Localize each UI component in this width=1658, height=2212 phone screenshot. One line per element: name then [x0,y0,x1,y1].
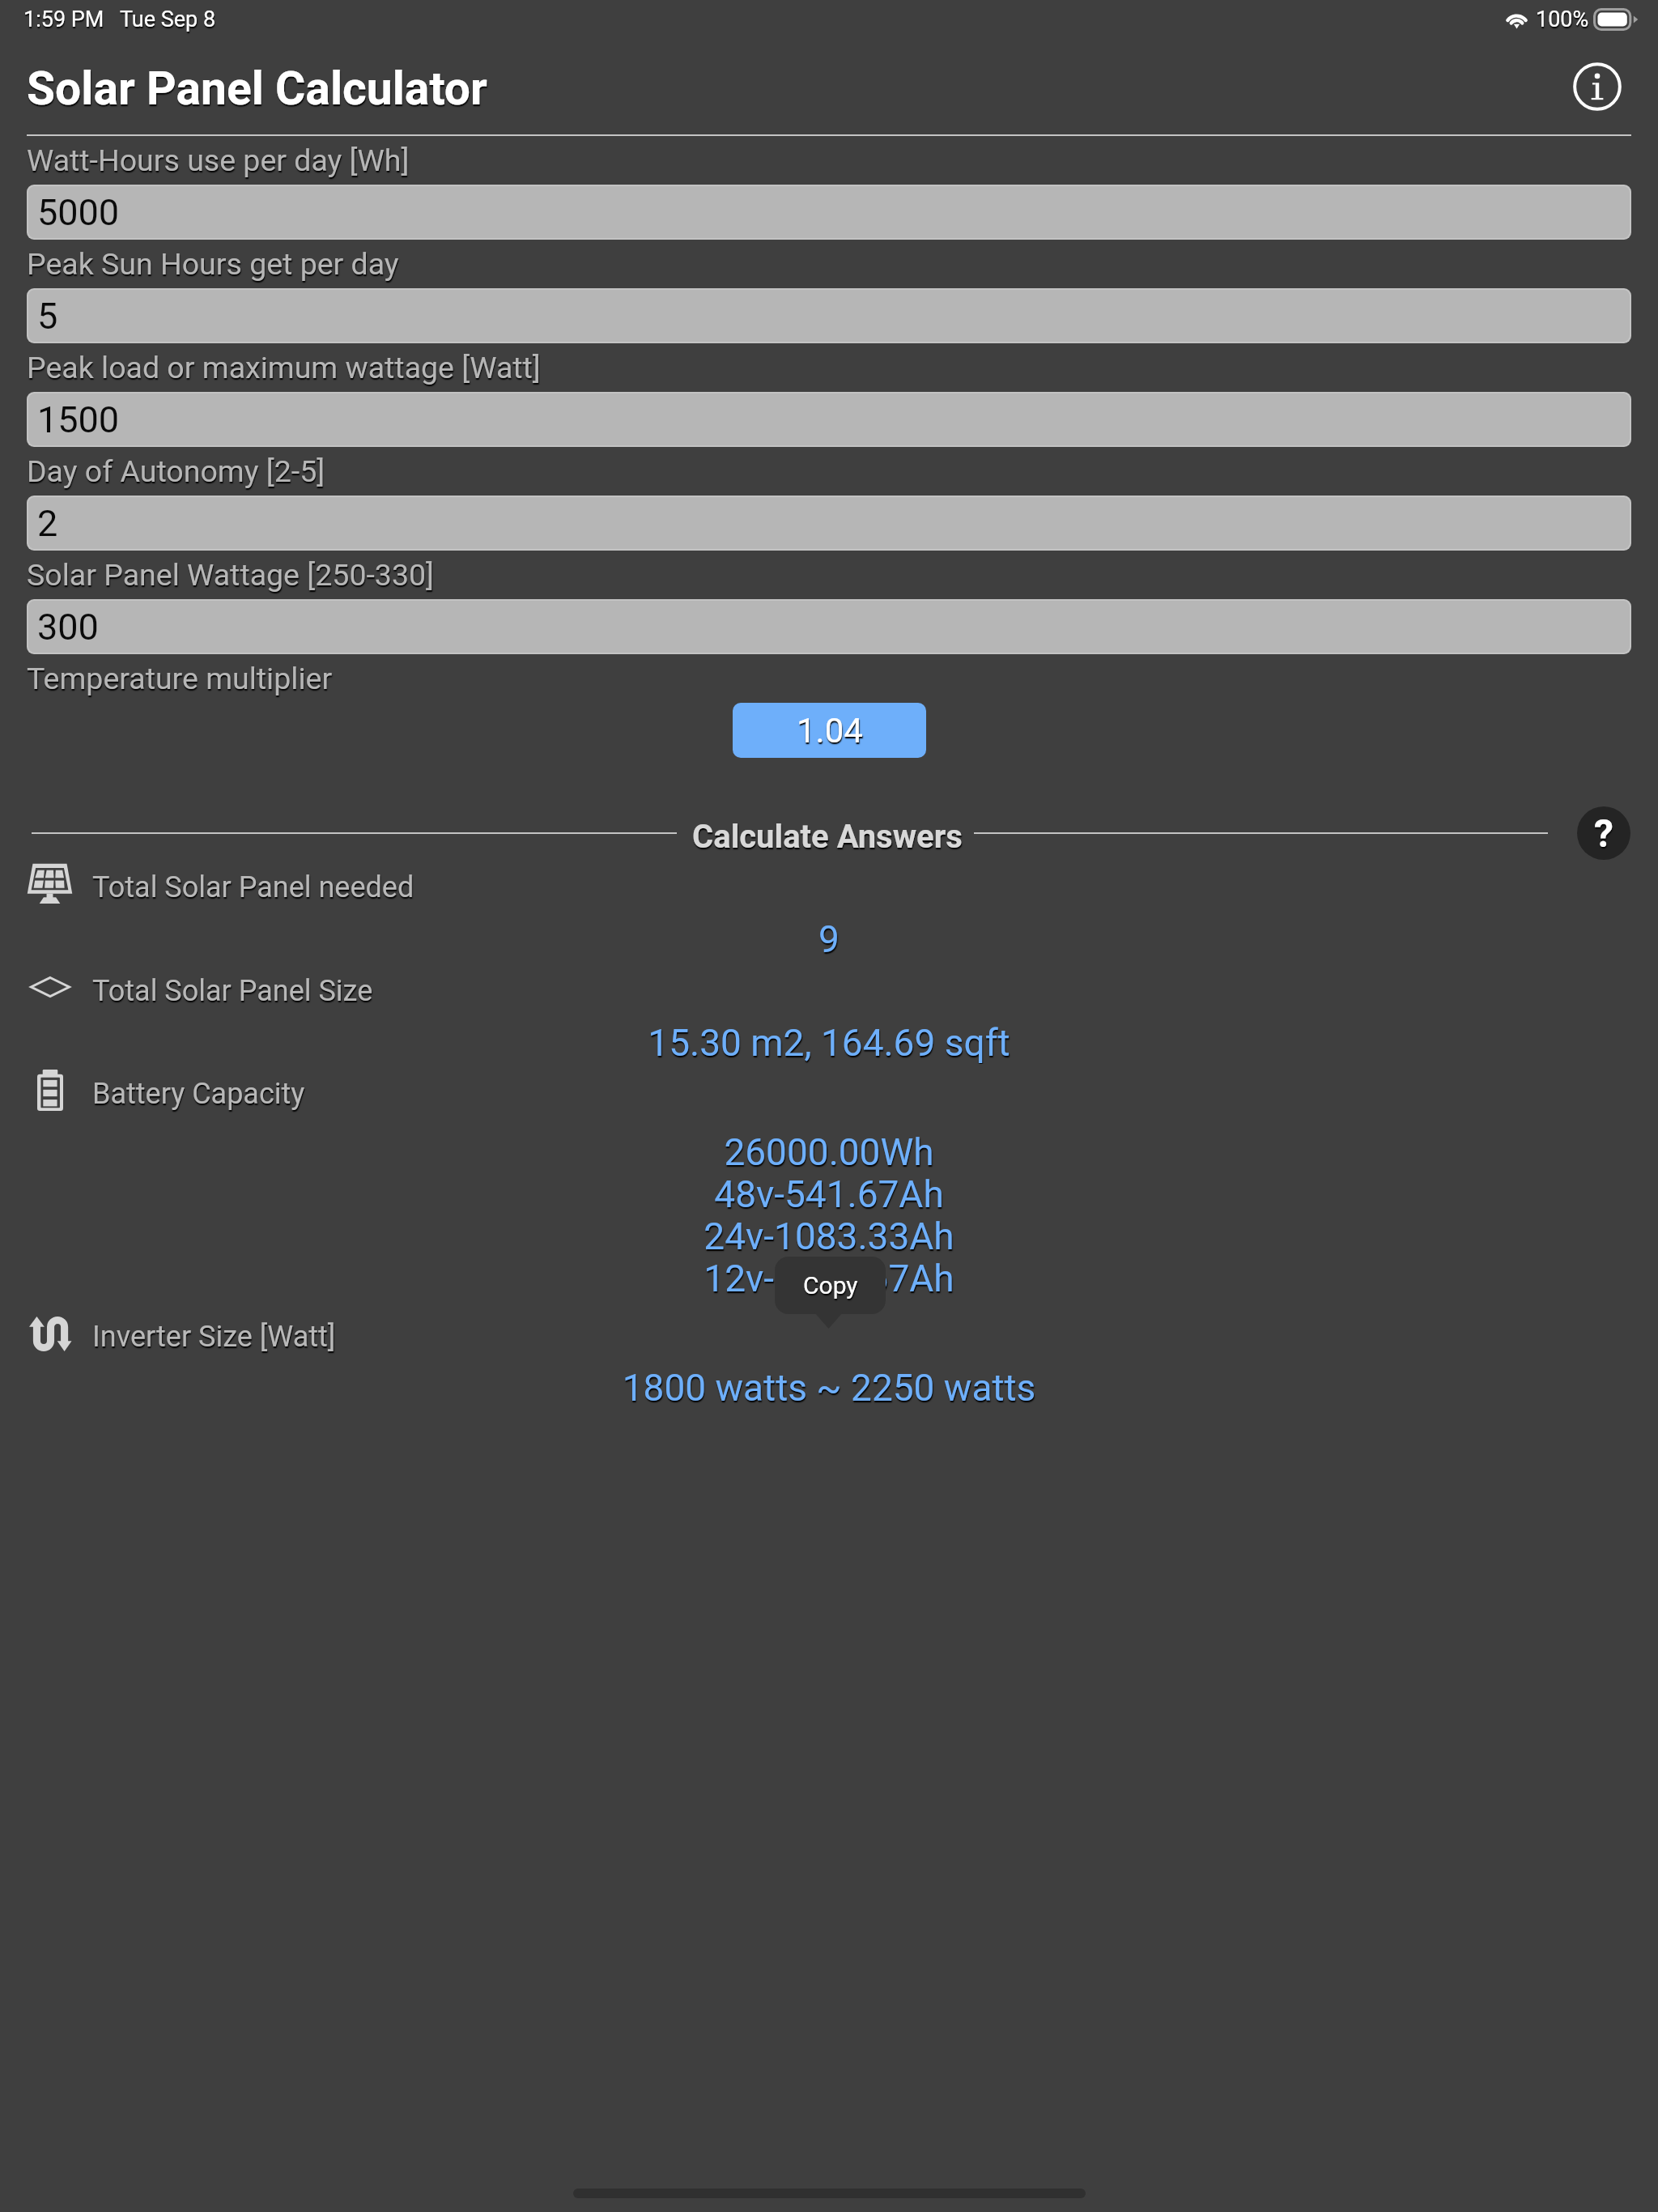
button[interactable]: 15.30 m2, 164.69 sqft [0,1021,1658,1064]
button[interactable]: 48v-541.67Ah [0,1172,1658,1215]
staticText: Total Solar Panel needed [92,870,414,904]
button[interactable]: 300 [28,601,1630,653]
button[interactable]: Copy [775,1257,886,1314]
staticText: 15.30 m2, 164.69 sqft [0,1021,1658,1064]
button[interactable]: 5 [28,290,1630,342]
staticText: Peak load or maximum wattage [Watt] [27,350,541,385]
staticText: 5 [37,295,58,338]
button[interactable]: 26000.00Wh [0,1130,1658,1173]
button[interactable]: 24v-1083.33Ah [0,1214,1658,1257]
button[interactable]: 2 [28,497,1630,549]
staticText: Solar Panel Wattage [250-330] [27,557,434,593]
staticText: Day of Autonomy [2-5] [27,453,325,489]
staticText: 1800 watts ~ 2250 watts [0,1366,1658,1409]
staticText: Battery Capacity [92,1077,305,1111]
staticText: 5000 [37,191,120,234]
button[interactable]: 5000 [28,186,1630,238]
staticText: 1.04 [797,711,863,751]
button[interactable]: Battery Capacity [16,1069,583,1114]
button[interactable]: 1500 [28,393,1630,445]
staticText: 1:59 PM Tue Sep 8 [23,6,216,32]
staticText: 12v-2166.67Ah [0,1257,1658,1300]
staticText: 48v-541.67Ah [0,1172,1658,1215]
staticText: 2 [37,502,58,545]
staticText: Solar Panel Calculator [27,62,487,116]
staticText: Total Solar Panel Size [92,974,373,1008]
button[interactable]: Inverter Size [Watt] [16,1312,583,1357]
button[interactable]: Help [1577,806,1630,860]
staticText: Inverter Size [Watt] [92,1320,336,1354]
staticText: 100% [1536,6,1589,32]
button[interactable]: 12v-2166.67Ah [0,1257,1658,1300]
staticText: Copy [803,1271,858,1300]
staticText: 9 [0,917,1658,960]
staticText: 300 [37,606,99,649]
button[interactable]: 9 [0,917,1658,960]
button[interactable]: 1.04 [733,703,926,758]
staticText: 26000.00Wh [0,1130,1658,1173]
button[interactable]: 1800 watts ~ 2250 watts [0,1366,1658,1409]
staticText: Watt-Hours use per day [Wh] [27,143,410,178]
staticText: Peak Sun Hours get per day [27,246,399,282]
staticText: Temperature multiplier [27,661,333,696]
button[interactable]: Information [1571,61,1623,113]
staticText: ? [1594,810,1613,856]
staticText: Calculate Answers [692,818,963,856]
staticText: 1500 [37,398,120,441]
button[interactable]: Total Solar Panel Size [16,966,583,1011]
button[interactable]: Total Solar Panel needed [16,862,583,908]
staticText: 24v-1083.33Ah [0,1214,1658,1257]
